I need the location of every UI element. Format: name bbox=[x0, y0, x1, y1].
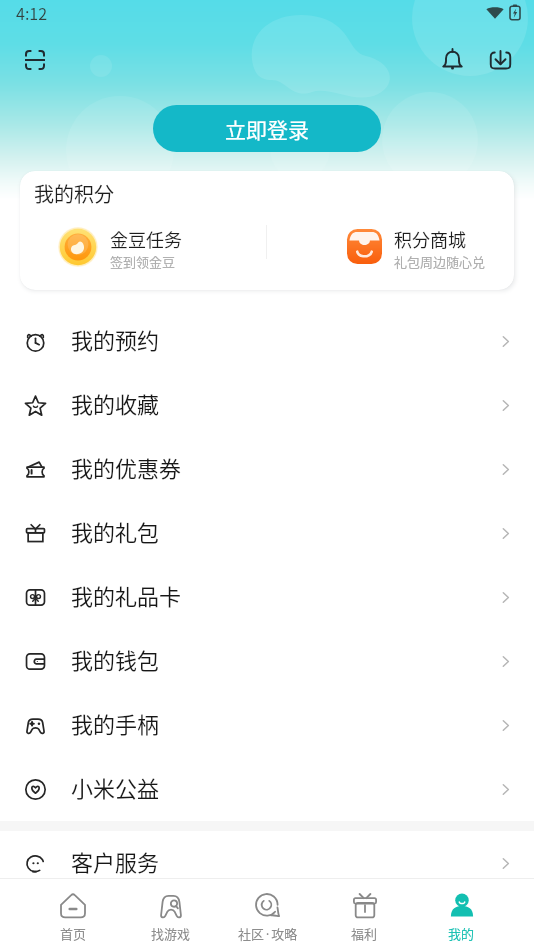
staticText: 我的手柄 bbox=[71, 707, 160, 739]
button[interactable]: 我的钱包 bbox=[0, 629, 534, 693]
button[interactable]: 我的收藏 bbox=[0, 373, 534, 437]
staticText: 社区·攻略 bbox=[238, 924, 298, 943]
button[interactable]: 首页 bbox=[24, 879, 122, 950]
staticText: 小米公益 bbox=[71, 771, 160, 803]
staticText: 我的优惠券 bbox=[71, 451, 182, 483]
button[interactable]: 我的预约 bbox=[0, 309, 534, 373]
staticText: 签到领金豆 bbox=[110, 252, 176, 271]
button[interactable]: Downloads bbox=[476, 36, 524, 84]
button[interactable]: 我的 bbox=[413, 879, 510, 950]
button[interactable]: 金豆任务 bbox=[20, 222, 266, 270]
staticText: 礼包周边随心兑 bbox=[394, 252, 486, 271]
staticText: 我的积分 bbox=[34, 179, 114, 208]
button[interactable]: 找游戏 bbox=[122, 879, 219, 950]
staticText: 我的礼品卡 bbox=[71, 579, 182, 611]
button[interactable]: 积分商城 bbox=[267, 222, 514, 270]
staticText: 客户服务 bbox=[71, 845, 160, 877]
staticText: 我的预约 bbox=[71, 323, 160, 355]
staticText: 我的收藏 bbox=[71, 387, 160, 419]
button[interactable]: 我的礼包 bbox=[0, 501, 534, 565]
staticText: 我的礼包 bbox=[71, 515, 160, 547]
staticText: 我的钱包 bbox=[71, 643, 160, 675]
button[interactable]: 福利 bbox=[316, 879, 413, 950]
button[interactable]: 我的礼品卡 bbox=[0, 565, 534, 629]
staticText: 首页 bbox=[60, 924, 87, 943]
staticText: 积分商城 bbox=[394, 226, 466, 252]
button[interactable]: 我的手柄 bbox=[0, 693, 534, 757]
staticText: 我的 bbox=[448, 924, 475, 943]
button[interactable]: 客户服务 bbox=[0, 831, 534, 895]
button[interactable]: 小米公益 bbox=[0, 757, 534, 821]
button[interactable]: 我的优惠券 bbox=[0, 437, 534, 501]
staticText: 找游戏 bbox=[151, 924, 191, 943]
staticText: 福利 bbox=[351, 924, 378, 943]
button[interactable]: 立即登录 bbox=[153, 105, 381, 152]
button[interactable]: 社区·攻略 bbox=[219, 879, 316, 950]
button[interactable]: Notifications bbox=[428, 36, 476, 84]
button[interactable]: Scan bbox=[11, 36, 59, 84]
staticText: 金豆任务 bbox=[110, 226, 182, 252]
staticText: 立即登录 bbox=[225, 114, 309, 144]
staticText: 4:12 bbox=[16, 1, 48, 24]
